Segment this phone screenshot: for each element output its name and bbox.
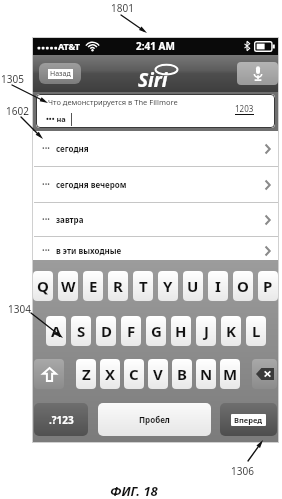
button[interactable]: D: [96, 316, 116, 346]
staticText: 1602: [6, 104, 29, 118]
button[interactable]: F: [121, 316, 141, 346]
button[interactable]: T: [133, 271, 153, 301]
staticText: O: [237, 276, 249, 296]
staticText: V: [153, 364, 163, 384]
staticText: 1203: [235, 103, 254, 114]
staticText: M: [223, 364, 238, 384]
button[interactable]: V: [148, 359, 168, 389]
staticText: G: [151, 321, 162, 341]
staticText: F: [127, 321, 136, 341]
staticText: R: [113, 276, 123, 296]
button[interactable]: R: [108, 271, 128, 301]
staticText: Пробел: [139, 414, 170, 425]
button[interactable]: .?123: [34, 403, 88, 436]
button[interactable]: Пробел: [98, 403, 211, 436]
button[interactable]: •••: [32, 167, 279, 202]
staticText: C: [129, 364, 139, 384]
staticText: L: [252, 321, 261, 341]
button[interactable]: P: [258, 271, 278, 301]
button[interactable]: X: [100, 359, 120, 389]
staticText: 1305: [1, 72, 24, 86]
staticText: H: [175, 321, 187, 341]
button[interactable]: E: [83, 271, 103, 301]
button[interactable]: L: [246, 316, 266, 346]
staticText: N: [200, 364, 213, 384]
staticText: сегодня вечером: [56, 179, 127, 190]
button[interactable]: Q: [33, 271, 53, 301]
staticText: P: [263, 276, 273, 296]
staticText: •••: [42, 144, 50, 154]
staticText: AT&T: [58, 40, 81, 52]
button[interactable]: I: [208, 271, 228, 301]
staticText: B: [177, 364, 187, 384]
staticText: W: [61, 276, 76, 296]
button[interactable]: G: [146, 316, 166, 346]
button[interactable]: U: [183, 271, 203, 301]
staticText: •••: [42, 246, 50, 256]
button[interactable]: Delete: [252, 359, 277, 389]
button[interactable]: W: [58, 271, 78, 301]
staticText: 2:41 AM: [136, 39, 175, 53]
staticText: 1306: [231, 464, 254, 478]
button[interactable]: K: [221, 316, 241, 346]
staticText: •••: [42, 180, 50, 190]
button[interactable]: Microphone: [237, 62, 278, 85]
staticText: 1801: [111, 1, 134, 15]
button[interactable]: O: [233, 271, 253, 301]
button[interactable]: Z: [76, 359, 96, 389]
button[interactable]: B: [172, 359, 192, 389]
staticText: T: [139, 276, 148, 296]
staticText: Siri: [138, 67, 168, 93]
button[interactable]: S: [71, 316, 91, 346]
button[interactable]: •••: [32, 131, 279, 166]
staticText: Назад: [50, 69, 71, 79]
button[interactable]: J: [196, 316, 216, 346]
staticText: A: [51, 321, 62, 341]
button[interactable]: A: [46, 316, 66, 346]
button[interactable]: C: [124, 359, 144, 389]
button[interactable]: Y: [158, 271, 178, 301]
staticText: сегодня: [56, 143, 89, 154]
button[interactable]: H: [171, 316, 191, 346]
button[interactable]: •••: [32, 241, 279, 260]
button[interactable]: N: [196, 359, 216, 389]
staticText: J: [204, 321, 209, 341]
staticText: завтра: [56, 214, 84, 225]
staticText: .?123: [49, 413, 74, 427]
staticText: Что демонстрируется в The Fillmore: [48, 97, 178, 107]
staticText: •••: [42, 215, 50, 225]
staticText: U: [187, 276, 199, 296]
staticText: I: [215, 276, 221, 296]
staticText: Y: [163, 276, 173, 296]
staticText: E: [89, 276, 98, 296]
staticText: S: [77, 321, 86, 341]
button[interactable]: •••: [32, 203, 279, 236]
staticText: 1304: [8, 302, 31, 316]
staticText: Вперед: [234, 415, 263, 425]
staticText: Q: [37, 276, 49, 296]
staticText: X: [105, 364, 116, 384]
staticText: в эти выходные: [56, 245, 122, 256]
staticText: Z: [82, 364, 91, 384]
staticText: ••• на: [46, 114, 66, 124]
button[interactable]: Shift: [34, 359, 64, 389]
staticText: D: [101, 321, 112, 341]
staticText: ФИГ. 18: [110, 482, 158, 499]
staticText: K: [226, 321, 236, 341]
button[interactable]: Назад: [39, 63, 81, 84]
button[interactable]: M: [220, 359, 240, 389]
button[interactable]: Вперед: [220, 403, 277, 436]
